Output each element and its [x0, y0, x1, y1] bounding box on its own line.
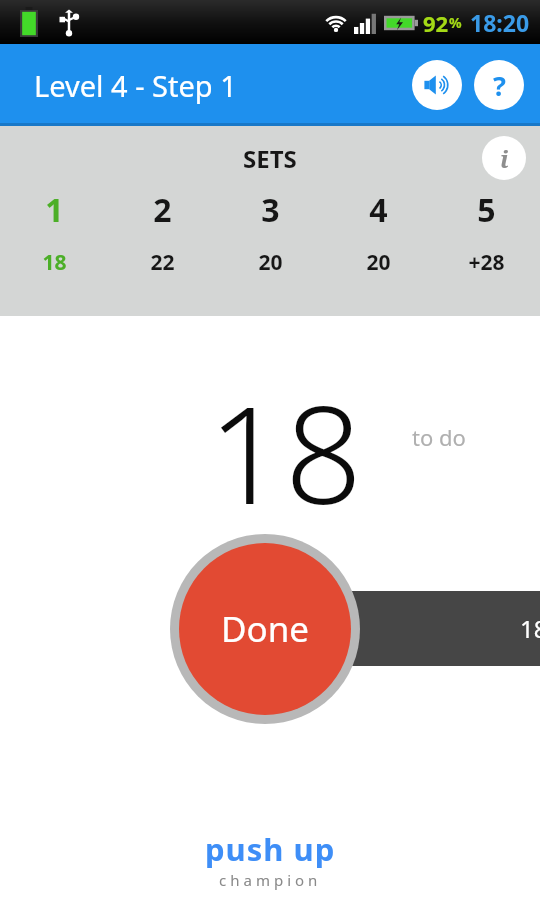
staticText: Level 4 - Step 1: [34, 66, 237, 105]
button[interactable]: 1: [0, 188, 108, 277]
staticText: i: [500, 142, 509, 175]
staticText: 92: [423, 8, 449, 38]
staticText: 2: [153, 188, 172, 232]
button[interactable]: Sound: [412, 60, 462, 110]
staticText: Done: [221, 605, 310, 653]
staticText: 18:20: [470, 7, 530, 38]
staticText: 5: [477, 188, 496, 232]
button[interactable]: 4: [324, 188, 432, 277]
button[interactable]: 3: [216, 188, 324, 277]
staticText: 20: [258, 248, 283, 277]
staticText: 22: [150, 248, 175, 277]
staticText: champion: [219, 870, 322, 890]
button[interactable]: Help: [474, 60, 524, 110]
staticText: 18: [520, 612, 540, 645]
staticText: 18: [42, 248, 67, 277]
button[interactable]: 2: [108, 188, 216, 277]
staticText: push up: [205, 828, 336, 870]
staticText: SETS: [243, 142, 297, 175]
button[interactable]: Done: [170, 534, 360, 724]
staticText: 3: [261, 188, 280, 232]
button[interactable]: 5: [432, 188, 540, 277]
staticText: to do: [412, 422, 466, 452]
button[interactable]: Info: [482, 136, 526, 180]
staticText: ?: [493, 67, 506, 104]
staticText: 1: [45, 188, 64, 232]
staticText: 20: [366, 248, 391, 277]
staticText: +28: [468, 248, 505, 277]
button[interactable]: 18: [272, 591, 540, 666]
staticText: 4: [369, 188, 388, 232]
staticText: %: [449, 13, 462, 32]
staticText: 18: [208, 360, 363, 544]
